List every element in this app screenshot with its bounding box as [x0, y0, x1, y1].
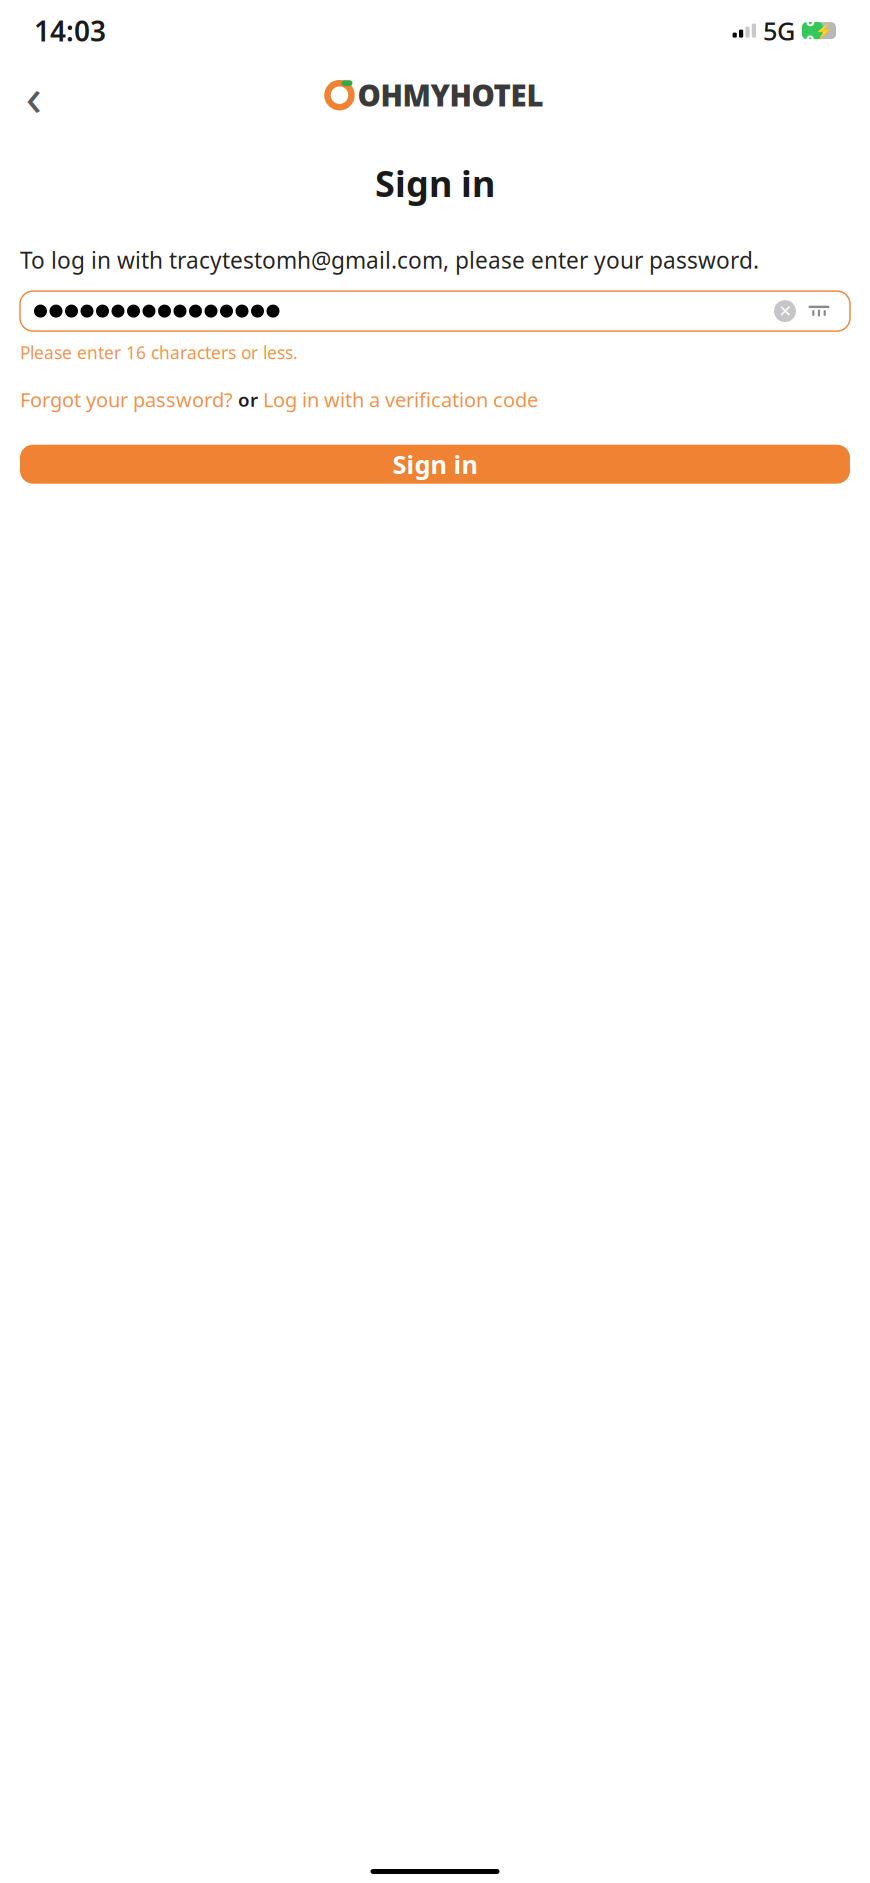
staticText: Sign in [392, 447, 477, 481]
staticText: or [233, 387, 263, 412]
staticText: ✕ [778, 302, 791, 320]
staticText: Sign in [375, 159, 495, 207]
staticText: 60 [805, 9, 814, 52]
staticText: OHMYHOTEL [357, 76, 543, 115]
button[interactable]: Log in with a verification code [263, 386, 538, 413]
button[interactable]: Forgot your password? [20, 386, 233, 413]
button[interactable]: Back [12, 73, 56, 117]
button[interactable]: Show password [802, 291, 836, 331]
staticText: 5G [763, 14, 795, 47]
staticText: Log in with a verification code [263, 386, 538, 413]
staticText: ⚡ [814, 22, 832, 39]
staticText: To log in with tracytestomh@gmail.com, p… [20, 245, 759, 275]
staticText: Forgot your password? [20, 386, 233, 413]
button[interactable]: Clear password [768, 291, 802, 331]
staticText: Please enter 16 characters or less. [20, 341, 298, 364]
button[interactable]: Sign in [20, 445, 850, 484]
staticText: 14:03 [34, 12, 106, 49]
staticText: ‹ [25, 60, 42, 131]
